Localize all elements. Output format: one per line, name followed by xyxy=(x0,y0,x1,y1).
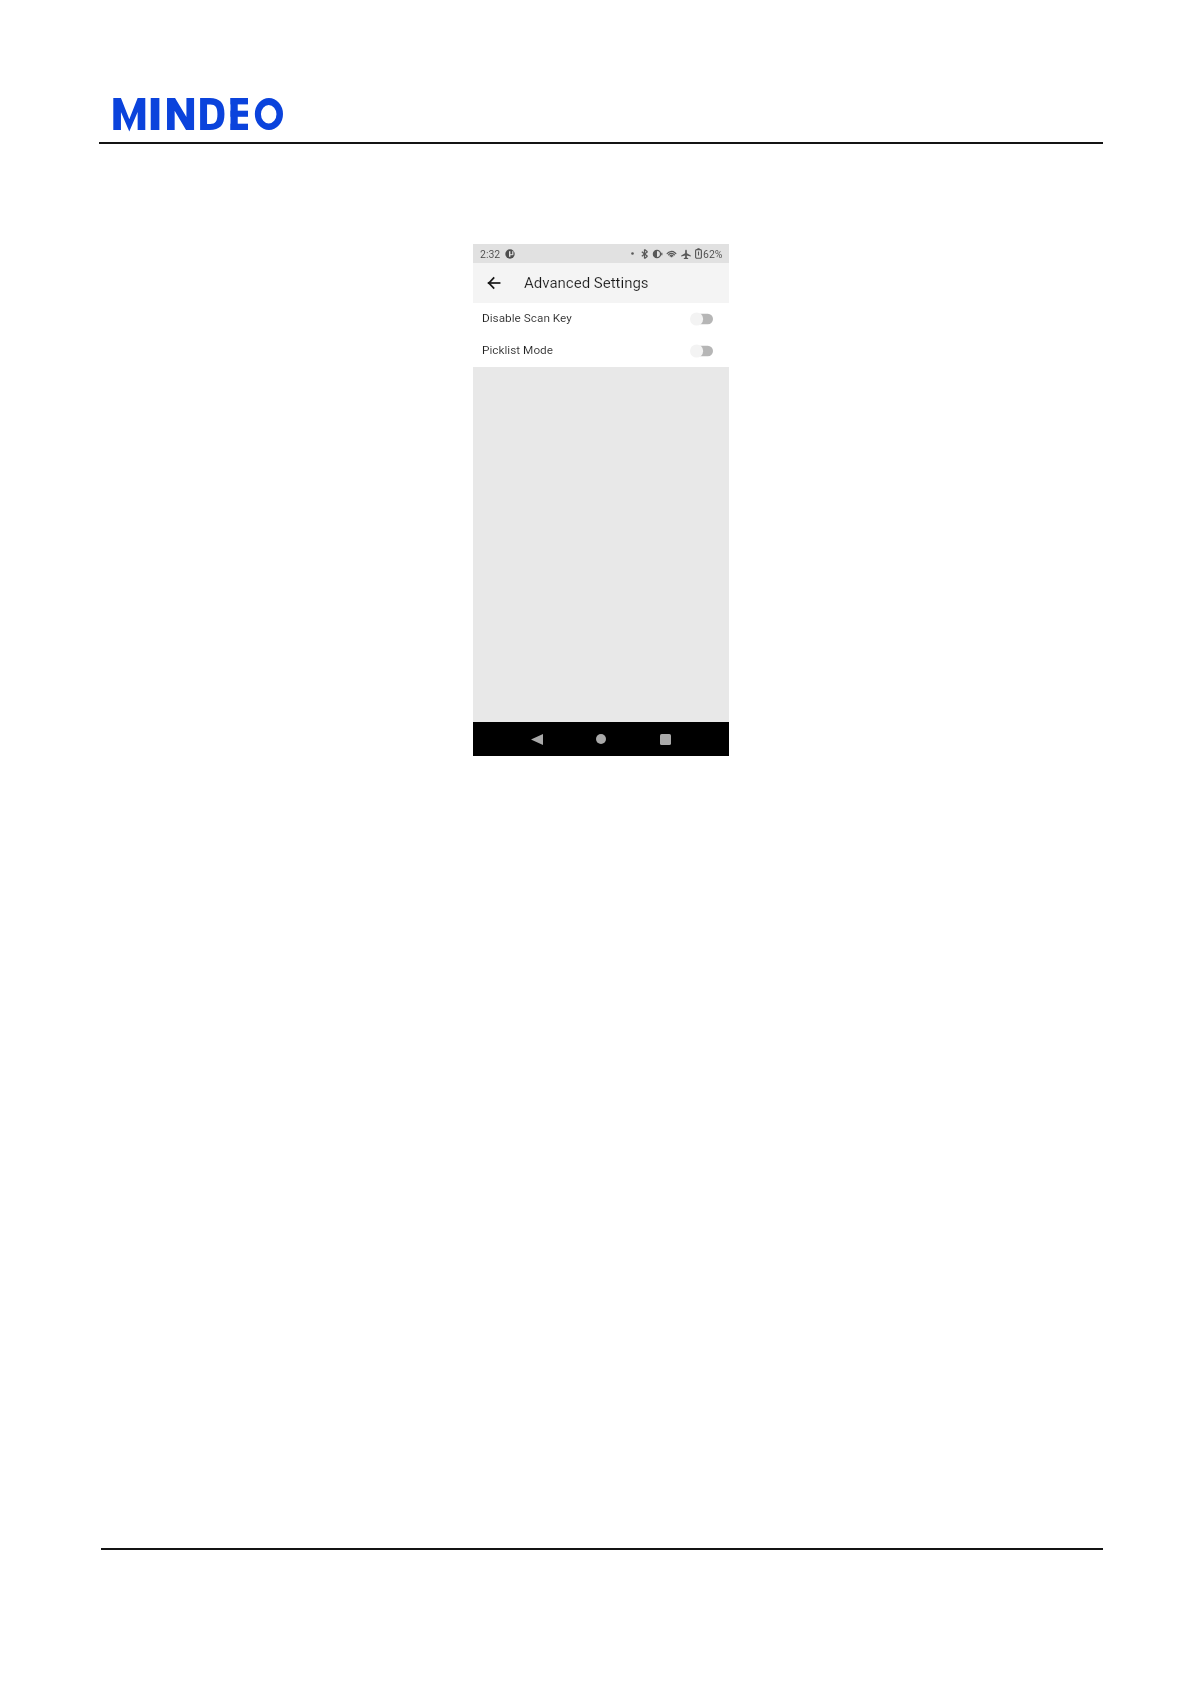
button[interactable]: Navigate up xyxy=(482,271,506,295)
staticText: 62% xyxy=(703,248,723,260)
button[interactable]: Recent apps xyxy=(647,722,683,756)
button[interactable]: Disable Scan Key xyxy=(473,303,729,335)
staticText: Advanced Settings xyxy=(524,274,649,292)
button[interactable]: Picklist Mode xyxy=(473,335,729,367)
staticText: 2:32 xyxy=(480,248,501,260)
button[interactable]: Home xyxy=(583,722,619,756)
button[interactable]: Back xyxy=(519,722,554,756)
button[interactable]: Picklist Mode, off xyxy=(690,344,713,358)
button[interactable]: Disable Scan Key, off xyxy=(690,312,713,326)
staticText: Picklist Mode xyxy=(482,343,554,357)
staticText: Disable Scan Key xyxy=(482,311,572,325)
